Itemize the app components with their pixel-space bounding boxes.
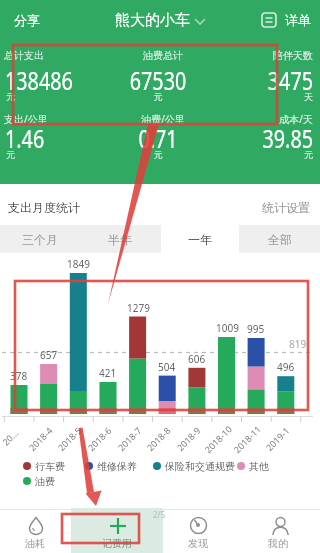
staticText: 保险和交通规费 — [165, 460, 235, 473]
staticText: 详单 — [285, 12, 311, 28]
staticText: 油费总计 — [108, 49, 218, 62]
staticText: 2018-8 — [144, 424, 173, 453]
staticText: 其他 — [249, 460, 269, 473]
button[interactable]: 油耗 — [0, 509, 80, 553]
button[interactable]: 发现 — [160, 509, 240, 553]
staticText: 元 — [103, 91, 213, 102]
staticText: 2018-6 — [85, 424, 114, 453]
staticText: 67530 — [116, 62, 200, 97]
button[interactable]: 统计设置 — [254, 194, 316, 218]
staticText: 总计支出 — [4, 49, 44, 62]
staticText: 三个月 — [22, 232, 58, 247]
staticText: 元 — [6, 149, 15, 160]
staticText: 天 — [203, 91, 313, 102]
staticText: 支出/公里 — [4, 112, 48, 126]
staticText: 0.71 — [116, 120, 200, 155]
staticText: 378 — [10, 369, 28, 381]
staticText: 1.46 — [5, 120, 89, 155]
staticText: 陪伴天数 — [203, 49, 313, 62]
staticText: 39.85 — [229, 120, 313, 155]
staticText: 2019-1 — [263, 424, 292, 453]
button[interactable]: 一年 — [160, 225, 240, 253]
staticText: 油费/公里 — [108, 112, 218, 126]
staticText: 3475 — [229, 62, 313, 97]
staticText: 496 — [277, 360, 295, 372]
staticText: 分享 — [14, 12, 40, 28]
staticText: 504 — [158, 360, 176, 372]
staticText: 维修保养 — [97, 460, 137, 473]
staticText: 成本/天 — [203, 112, 313, 126]
staticText: 2/5 — [153, 509, 166, 520]
staticText: 半年 — [108, 232, 132, 247]
button[interactable]: 三个月 — [0, 225, 80, 253]
staticText: 2018-5 — [55, 424, 84, 453]
staticText: 记费用 — [102, 537, 132, 550]
staticText: 熊大的小车 — [115, 11, 190, 30]
staticText: 我的 — [268, 537, 288, 550]
staticText: 1849 — [67, 257, 90, 269]
button[interactable]: 我的 — [240, 509, 320, 553]
staticText: 油费 — [35, 475, 55, 488]
button[interactable]: 记费用 — [80, 509, 160, 553]
staticText: 元 — [103, 149, 213, 160]
staticText: 行车费 — [35, 460, 65, 473]
staticText: 统计设置 — [262, 200, 310, 215]
staticText: 全部 — [268, 232, 292, 247]
staticText: 支出月度统计 — [8, 200, 80, 215]
staticText: 1009 — [216, 321, 239, 333]
button[interactable]: 详单 — [258, 6, 316, 34]
staticText: 20... — [0, 426, 21, 448]
staticText: 一年 — [188, 232, 212, 247]
staticText: 606 — [188, 352, 206, 364]
staticText: 995 — [247, 322, 265, 334]
staticText: 油耗 — [25, 537, 45, 550]
staticText: 2018-7 — [115, 424, 144, 453]
button[interactable]: 全部 — [240, 225, 320, 253]
staticText: 2018-9 — [174, 424, 203, 453]
staticText: 421 — [99, 366, 117, 378]
staticText: 2018-4 — [26, 424, 55, 453]
button[interactable]: 半年 — [80, 225, 160, 253]
staticText: 2018-11 — [231, 423, 263, 455]
staticText: 138486 — [5, 62, 89, 97]
button[interactable]: 分享 — [8, 6, 52, 34]
staticText: 元 — [6, 91, 15, 102]
staticText: 819 — [289, 337, 307, 351]
staticText: 2018-10 — [202, 423, 234, 455]
staticText: 657 — [40, 348, 58, 360]
staticText: 发现 — [188, 537, 208, 550]
button[interactable]: 熊大的小车 — [115, 11, 205, 30]
staticText: 1279 — [127, 301, 150, 313]
staticText: 元 — [203, 149, 313, 160]
